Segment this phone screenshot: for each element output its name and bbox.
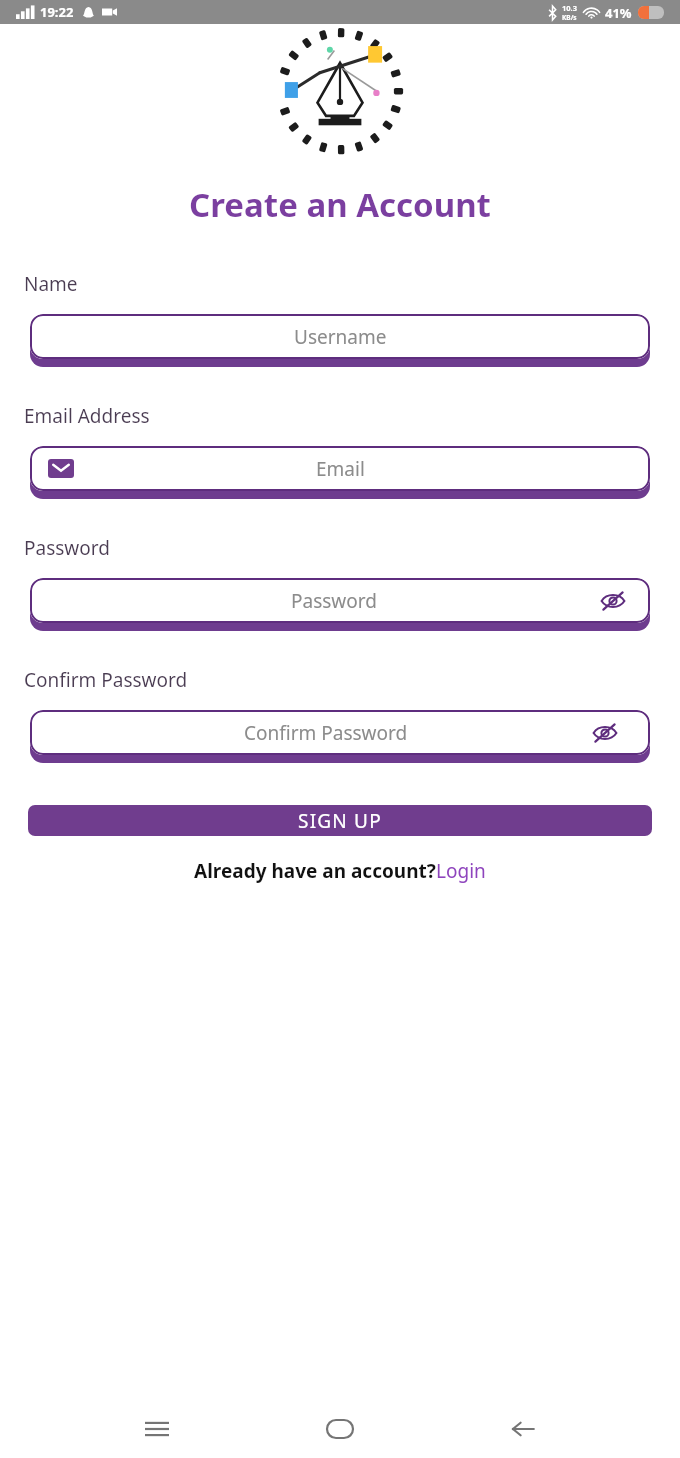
staticText: Username: [294, 324, 387, 350]
staticText: Password: [24, 535, 110, 561]
button[interactable]: Email: [30, 446, 650, 499]
staticText: KB/s: [562, 13, 577, 22]
staticText: Confirm Password: [24, 667, 188, 693]
button[interactable]: Recents: [131, 1403, 183, 1455]
staticText: Confirm Password: [244, 720, 408, 746]
staticText: Login: [436, 858, 486, 884]
staticText: Name: [24, 271, 78, 297]
staticText: 19:22: [40, 3, 74, 21]
button[interactable]: Back: [497, 1403, 549, 1455]
button[interactable]: Toggle password visibility: [590, 718, 620, 748]
staticText: Already have an account?: [194, 858, 436, 884]
button[interactable]: Toggle password visibility: [598, 586, 628, 616]
staticText: Email Address: [24, 403, 150, 429]
button[interactable]: Username: [30, 314, 650, 367]
staticText: SIGN UP: [298, 808, 382, 834]
button[interactable]: SIGN UP: [28, 805, 652, 836]
button[interactable]: Confirm Password: [30, 710, 650, 763]
button[interactable]: Password: [30, 578, 650, 631]
staticText: 41%: [605, 4, 632, 22]
staticText: 10.3: [562, 3, 577, 13]
button[interactable]: Login: [436, 858, 486, 884]
button[interactable]: Home: [314, 1403, 366, 1455]
staticText: Email: [316, 456, 365, 482]
staticText: Password: [291, 588, 377, 614]
other: Email: [48, 459, 74, 478]
staticText: Create an Account: [0, 182, 680, 227]
